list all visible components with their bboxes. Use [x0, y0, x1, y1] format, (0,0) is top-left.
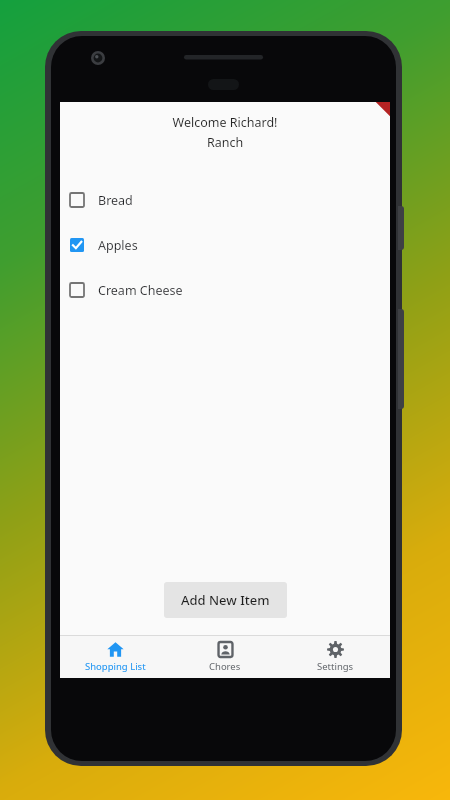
button[interactable]: Bread	[60, 188, 390, 212]
staticText: Add New Item	[181, 591, 270, 609]
staticText: Shopping List	[85, 660, 146, 673]
button[interactable]: Shopping List	[60, 636, 170, 678]
staticText: Bread	[98, 192, 133, 209]
staticText: Cream Cheese	[98, 282, 183, 299]
button[interactable]: Settings	[280, 636, 390, 678]
button[interactable]: Chores	[170, 636, 280, 678]
staticText: Welcome Richard!	[60, 114, 390, 131]
button[interactable]: Add New Item	[164, 582, 287, 618]
button[interactable]: Apples	[60, 233, 390, 257]
staticText: Chores	[209, 660, 241, 673]
staticText: Ranch	[60, 134, 390, 151]
button[interactable]: Cream Cheese	[60, 278, 390, 302]
staticText: Settings	[317, 660, 354, 673]
staticText: Apples	[98, 237, 138, 254]
